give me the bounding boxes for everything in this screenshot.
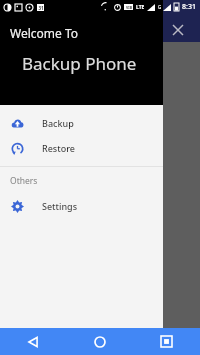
staticText: LTE — [136, 4, 145, 11]
button[interactable]: Close — [169, 21, 187, 39]
staticText: VIB — [126, 5, 132, 10]
staticText: Backup Phone — [22, 52, 137, 75]
staticText: 8:31 — [182, 2, 196, 12]
button[interactable]: Restore — [0, 137, 163, 159]
staticText: Restore — [42, 142, 75, 154]
button[interactable]: Play video — [8, 58, 38, 79]
button[interactable]: Settings — [0, 195, 163, 217]
staticText: G — [158, 4, 162, 10]
staticText: Welcome To — [10, 25, 79, 41]
staticText: Settings — [42, 200, 78, 212]
button[interactable]: Back — [0, 328, 66, 355]
staticText: Others — [10, 175, 38, 187]
staticText: 31 — [38, 5, 44, 11]
button[interactable]: Backup — [0, 112, 163, 134]
button[interactable]: Home — [66, 328, 133, 355]
button[interactable]: Recents — [133, 328, 200, 355]
staticText: Backup — [42, 117, 74, 129]
